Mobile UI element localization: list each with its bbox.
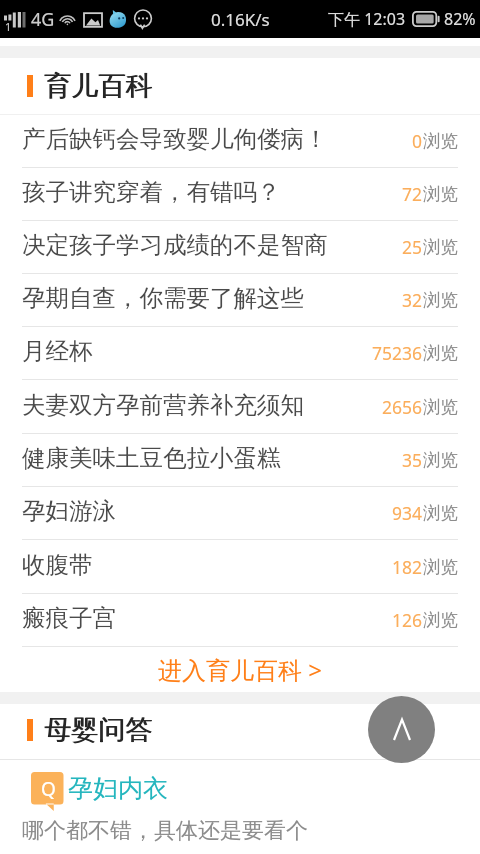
staticText: 浏览 — [423, 183, 458, 205]
button[interactable]: 健康美味土豆色拉小蛋糕 — [0, 434, 480, 486]
button[interactable]: 决定孩子学习成绩的不是智商 — [0, 221, 480, 273]
staticText: 0.16K/s — [211, 8, 270, 31]
staticText: 孩子讲究穿着，有错吗？ — [22, 177, 281, 207]
staticText: 母婴问答 — [45, 713, 153, 747]
staticText: 浏览 — [423, 289, 458, 311]
staticText: 进入育儿百科 > — [158, 653, 322, 686]
button[interactable]: 孩子讲究穿着，有错吗？ — [0, 168, 480, 220]
button[interactable]: 进入育儿百科 > — [0, 647, 480, 692]
staticText: 哪个都不错，具体还是要看个 — [22, 817, 308, 845]
staticText: 4G — [31, 7, 55, 32]
staticText: 孕期自查，你需要了解这些 — [22, 283, 304, 313]
button[interactable]: 收腹带 — [0, 540, 480, 593]
staticText: 夫妻双方孕前营养补充须知 — [22, 390, 304, 420]
staticText: Q — [41, 776, 56, 802]
button[interactable]: 月经杯 — [0, 327, 480, 379]
staticText: 浏览 — [423, 342, 458, 364]
staticText: 健康美味土豆色拉小蛋糕 — [22, 443, 281, 473]
staticText: 瘢痕子宫 — [22, 603, 116, 633]
staticText: 母婴问答 — [44, 713, 152, 747]
staticText: 72 — [402, 182, 423, 206]
staticText: 82% — [444, 8, 476, 30]
staticText: 下午 12:03 — [328, 8, 406, 30]
button[interactable]: 孕妇游泳 — [0, 487, 480, 539]
staticText: 0 — [412, 129, 423, 153]
staticText: 育儿百科 — [45, 69, 153, 103]
staticText: 1 — [5, 19, 12, 34]
staticText: 25 — [402, 235, 423, 259]
staticText: 75236 — [372, 341, 423, 365]
staticText: 收腹带 — [22, 550, 93, 580]
button[interactable]: Q — [0, 760, 480, 854]
button[interactable]: Scroll to top — [368, 696, 435, 763]
staticText: 182 — [392, 555, 423, 579]
staticText: 934 — [392, 501, 423, 525]
staticText: 2656 — [382, 395, 423, 419]
staticText: 32 — [402, 288, 423, 312]
staticText: 产后缺钙会导致婴儿佝偻病！ — [22, 124, 328, 154]
staticText: 浏览 — [423, 556, 458, 578]
staticText: 浏览 — [423, 396, 458, 418]
staticText: 浏览 — [423, 130, 458, 152]
staticText: 月经杯 — [22, 336, 93, 366]
staticText: 浏览 — [423, 449, 458, 471]
staticText: 浏览 — [423, 236, 458, 258]
button[interactable]: 孕期自查，你需要了解这些 — [0, 274, 480, 326]
staticText: 孕妇游泳 — [22, 496, 116, 526]
staticText: 孕妇内衣 — [68, 773, 168, 804]
staticText: 决定孩子学习成绩的不是智商 — [22, 230, 328, 260]
staticText: 浏览 — [423, 609, 458, 631]
button[interactable]: 夫妻双方孕前营养补充须知 — [0, 380, 480, 433]
button[interactable]: 产后缺钙会导致婴儿佝偻病！ — [0, 115, 480, 167]
button[interactable]: 瘢痕子宫 — [0, 594, 480, 646]
staticText: 浏览 — [423, 502, 458, 524]
staticText: 育儿百科 — [44, 69, 152, 103]
staticText: 126 — [392, 608, 423, 632]
staticText: 35 — [402, 448, 423, 472]
